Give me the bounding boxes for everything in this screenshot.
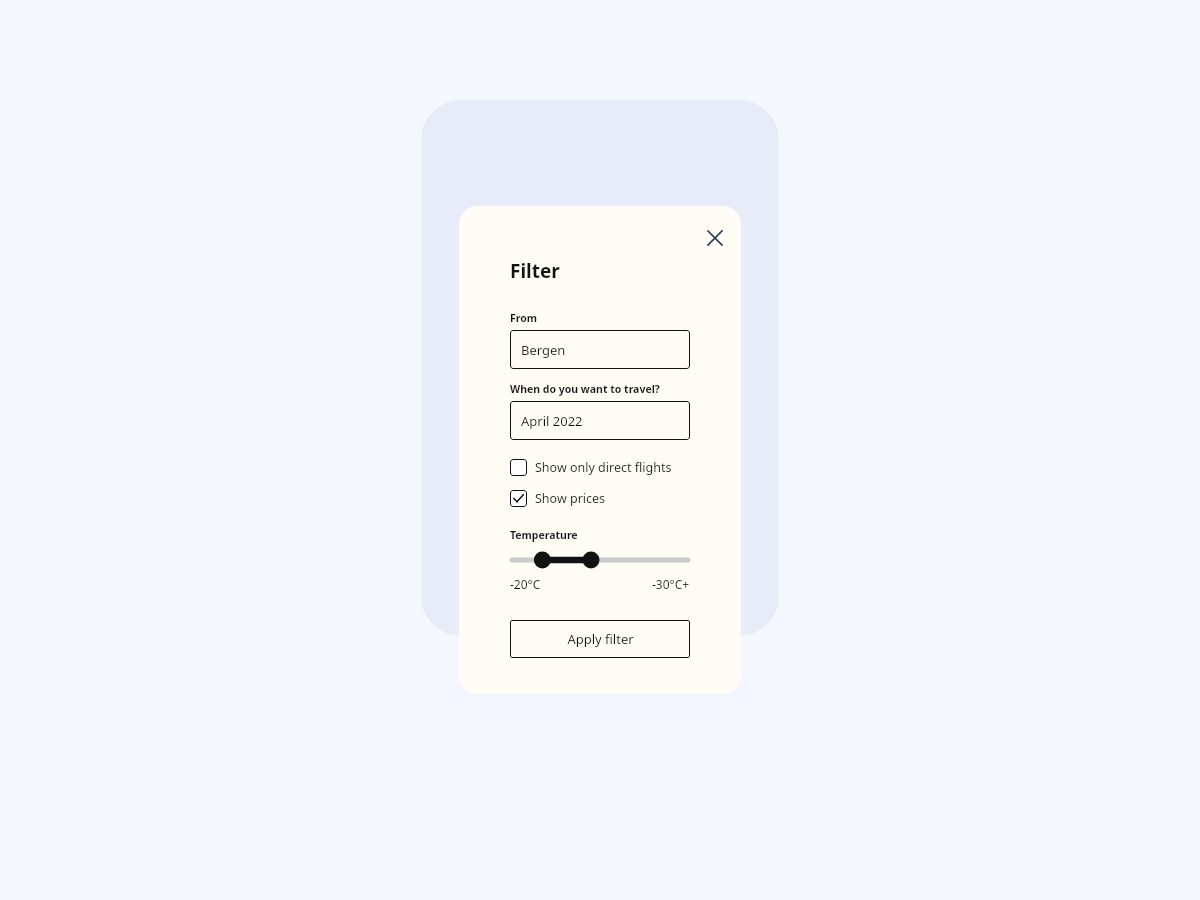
staticText: Filter	[510, 258, 560, 284]
staticText: April 2022	[521, 412, 583, 430]
button[interactable]: Apply filter	[510, 620, 690, 658]
staticText: Apply filter	[567, 630, 634, 648]
button[interactable]: Bergen	[510, 330, 690, 369]
button[interactable]: Temperature range	[510, 550, 690, 570]
staticText: -20°C	[510, 576, 541, 592]
staticText: When do you want to travel?	[510, 382, 660, 396]
staticText: -30°C+	[652, 576, 690, 592]
button[interactable]: April 2022	[510, 401, 690, 440]
staticText: Show only direct flights	[535, 459, 672, 476]
staticText: Show prices	[535, 490, 606, 507]
staticText: Temperature	[510, 528, 578, 542]
button[interactable]: Show only direct flights	[510, 459, 690, 476]
button[interactable]: Show prices	[510, 490, 690, 507]
staticText: From	[510, 311, 538, 325]
button[interactable]: Close	[697, 220, 733, 256]
staticText: Bergen	[521, 341, 566, 359]
